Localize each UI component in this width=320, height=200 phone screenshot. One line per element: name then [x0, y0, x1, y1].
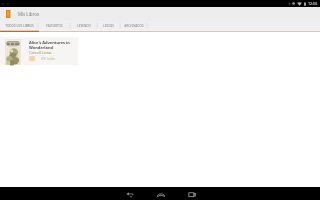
button[interactable]: FAVORITOS — [38, 21, 70, 30]
button[interactable]: Recents — [180, 188, 203, 200]
staticText: 0% leido — [41, 56, 56, 61]
staticText: Mis Libros — [18, 11, 39, 17]
staticText: Alice's Adventures in Wonderland — [29, 40, 70, 50]
staticText: Carroll Lewis — [29, 50, 52, 55]
button[interactable]: TODOS LOS LIBROS — [0, 21, 38, 30]
staticText: FAVORITOS — [46, 24, 63, 28]
button[interactable]: ARCHIVADOS — [120, 21, 147, 30]
button[interactable]: Back — [118, 188, 141, 200]
staticText: 12:56 — [308, 1, 318, 6]
button[interactable]: Home — [149, 188, 172, 200]
button[interactable]: Alice's Adventures in Wonderland — [0, 37, 78, 65]
staticText: LEIDOS — [103, 24, 114, 28]
staticText: LEYENDO — [77, 24, 91, 28]
button[interactable]: LEIDOS — [97, 21, 120, 30]
staticText: TODOS LOS LIBROS — [5, 24, 34, 28]
staticText: ARCHIVADOS — [124, 24, 144, 28]
button[interactable]: LEYENDO — [70, 21, 97, 30]
